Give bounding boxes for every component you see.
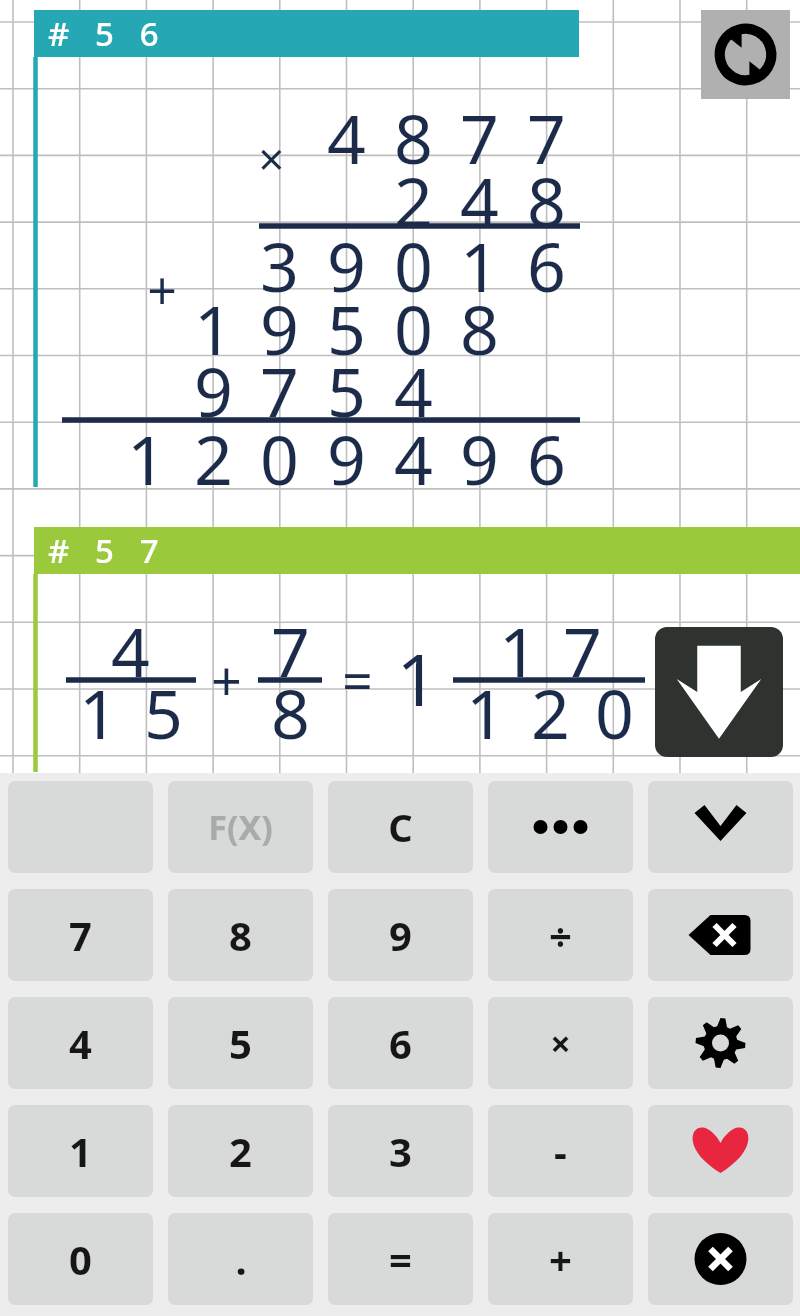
button[interactable]: 9 (328, 889, 473, 981)
button[interactable]: 7 (8, 889, 153, 981)
staticText: 1 (499, 604, 538, 697)
button[interactable]: Close (648, 1213, 793, 1305)
button[interactable]: 0 (8, 1213, 153, 1305)
button[interactable]: 1 (8, 1105, 153, 1197)
staticText: ÷ (549, 908, 572, 962)
staticText: 4 (111, 604, 150, 697)
staticText: 7 (271, 604, 310, 697)
staticText: 4 (460, 154, 499, 247)
staticText: 7 (460, 91, 499, 184)
staticText: + (211, 643, 242, 717)
staticText: 7 (527, 91, 566, 184)
staticText: 4 (69, 1016, 92, 1070)
staticText: 0 (595, 666, 634, 759)
staticText: 5 (327, 344, 366, 437)
staticText: 7 (69, 908, 92, 962)
staticText: + (549, 1232, 572, 1286)
staticText: 4 (394, 412, 433, 505)
button[interactable]: F(X) (168, 781, 313, 873)
staticText: 0 (394, 219, 433, 312)
button[interactable]: + (488, 1213, 633, 1305)
button[interactable]: - (488, 1105, 633, 1197)
staticText: 4 (394, 344, 433, 437)
staticText: × (550, 1019, 571, 1068)
staticText: 2 (194, 412, 233, 505)
staticText: 5 (144, 666, 183, 759)
staticText: # 5 6 (48, 11, 159, 56)
staticText: 7 (260, 344, 299, 437)
button[interactable]: . (168, 1213, 313, 1305)
staticText: 1 (194, 282, 233, 375)
staticText: 3 (260, 219, 299, 312)
staticText: F(X) (208, 804, 273, 850)
button[interactable]: Refresh (701, 10, 790, 99)
staticText: 6 (527, 412, 566, 505)
staticText: × (258, 127, 285, 190)
staticText: 4 (327, 91, 366, 184)
staticText: 9 (260, 282, 299, 375)
staticText: 6 (527, 219, 566, 312)
staticText: 8 (394, 91, 433, 184)
staticText: 9 (327, 219, 366, 312)
button[interactable]: 4 (8, 997, 153, 1089)
button[interactable]: # 5 7 (34, 527, 800, 574)
staticText: 2 (394, 154, 433, 247)
button[interactable]: C (328, 781, 473, 873)
staticText: 9 (327, 412, 366, 505)
staticText: - (554, 1124, 567, 1178)
staticText: 2 (229, 1124, 252, 1178)
button[interactable]: Hide keypad (648, 781, 793, 873)
staticText: 8 (460, 282, 499, 375)
staticText: 9 (389, 908, 412, 962)
button[interactable]: = (328, 1213, 473, 1305)
button[interactable]: 5 (168, 997, 313, 1089)
button[interactable]: More options (488, 781, 633, 873)
staticText: 8 (229, 908, 252, 962)
staticText: 5 (229, 1016, 252, 1070)
staticText: 1 (466, 666, 505, 759)
staticText: 2 (531, 666, 570, 759)
button[interactable]: Insert result (655, 627, 783, 757)
button[interactable]: ÷ (488, 889, 633, 981)
staticText: 0 (394, 282, 433, 375)
staticText: 5 (327, 282, 366, 375)
staticText: = (389, 1232, 412, 1286)
button[interactable]: # 5 6 (34, 10, 579, 57)
staticText: 1 (127, 412, 166, 505)
button[interactable]: 3 (328, 1105, 473, 1197)
staticText: 6 (389, 1016, 412, 1070)
staticText: + (147, 254, 177, 325)
button[interactable]: 6 (328, 997, 473, 1089)
staticText: # 5 7 (48, 528, 159, 573)
staticText: = (342, 643, 373, 717)
staticText: 9 (194, 344, 233, 437)
button[interactable]: Backspace (648, 889, 793, 981)
button[interactable]: Favourites (648, 1105, 793, 1197)
staticText: 7 (563, 604, 602, 697)
staticText: C (388, 801, 413, 853)
staticText: 8 (271, 666, 310, 759)
button[interactable]: × (488, 997, 633, 1089)
button[interactable]: 8 (168, 889, 313, 981)
staticText: 0 (260, 412, 299, 505)
button[interactable]: 2 (168, 1105, 313, 1197)
staticText: 8 (527, 154, 566, 247)
staticText: 1 (460, 219, 499, 312)
staticText: . (235, 1232, 247, 1286)
staticText: 1 (69, 1124, 92, 1178)
button[interactable]: Settings (648, 997, 793, 1089)
staticText: 1 (79, 666, 118, 759)
staticText: 9 (460, 412, 499, 505)
staticText: 1 (396, 629, 438, 727)
staticText: 0 (69, 1232, 92, 1286)
staticText: 3 (389, 1124, 412, 1178)
